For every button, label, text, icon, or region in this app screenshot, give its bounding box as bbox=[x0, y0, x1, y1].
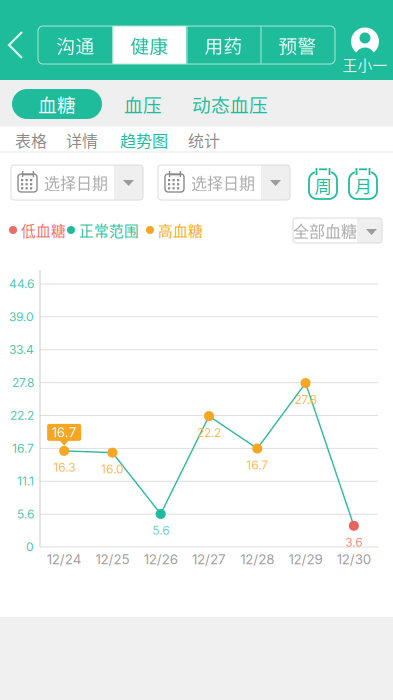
button[interactable]: 用药 bbox=[186, 26, 260, 64]
staticText: 详情 bbox=[66, 128, 98, 152]
staticText: 正常范围 bbox=[79, 219, 139, 241]
staticText: 12/27 bbox=[192, 551, 226, 567]
staticText: 22.2 bbox=[10, 408, 34, 423]
staticText: 12/26 bbox=[144, 551, 178, 567]
button[interactable]: 动态血压 bbox=[187, 89, 273, 119]
button[interactable]: Profile 王小一 bbox=[337, 25, 393, 75]
staticText: 选择日期 bbox=[44, 171, 108, 194]
button[interactable]: 全部血糖 bbox=[293, 218, 382, 243]
staticText: 27.8 bbox=[295, 392, 317, 407]
staticText: 高血糖 bbox=[158, 219, 203, 241]
staticText: 用药 bbox=[204, 31, 242, 58]
button[interactable]: 血压 bbox=[113, 89, 173, 119]
staticText: 0 bbox=[26, 540, 34, 554]
staticText: 王小一 bbox=[342, 54, 387, 75]
button[interactable]: 周 bbox=[308, 163, 338, 201]
staticText: 12/24 bbox=[47, 551, 82, 567]
staticText: 16.3 bbox=[53, 460, 75, 475]
staticText: 39.0 bbox=[9, 310, 34, 324]
button[interactable]: 沟通 bbox=[38, 26, 112, 64]
staticText: 统计 bbox=[188, 128, 220, 152]
staticText: 16.7 bbox=[52, 424, 77, 440]
staticText: 44.6 bbox=[9, 277, 34, 291]
staticText: 11.1 bbox=[17, 474, 34, 488]
staticText: 5.6 bbox=[152, 523, 169, 538]
button[interactable]: 表格 bbox=[6, 126, 56, 153]
staticText: 12/28 bbox=[240, 551, 274, 567]
staticText: 33.4 bbox=[9, 342, 34, 357]
staticText: 16.0 bbox=[101, 462, 124, 476]
staticText: 表格 bbox=[15, 128, 47, 152]
staticText: 低血糖 bbox=[21, 219, 66, 241]
button[interactable]: 选择日期 bbox=[11, 165, 143, 200]
button[interactable]: 健康 bbox=[112, 26, 186, 64]
staticText: 12/25 bbox=[95, 551, 129, 567]
button[interactable]: 血糖 bbox=[12, 89, 102, 119]
staticText: 3.6 bbox=[345, 535, 362, 549]
staticText: 27.8 bbox=[12, 375, 34, 390]
staticText: 预警 bbox=[278, 31, 316, 58]
staticText: 16.7 bbox=[12, 441, 34, 456]
staticText: 全部血糖 bbox=[293, 219, 357, 242]
staticText: 动态血压 bbox=[192, 90, 268, 117]
staticText: 12/29 bbox=[289, 551, 323, 567]
staticText: 16.7 bbox=[246, 458, 268, 472]
button[interactable]: 月 bbox=[348, 163, 378, 201]
button[interactable]: 统计 bbox=[179, 126, 229, 153]
staticText: 健康 bbox=[130, 31, 168, 58]
staticText: 血压 bbox=[124, 90, 162, 117]
staticText: 血糖 bbox=[38, 90, 76, 117]
button[interactable]: 预警 bbox=[260, 26, 334, 64]
staticText: 12/30 bbox=[337, 551, 371, 567]
button[interactable]: 趋势图 bbox=[119, 126, 169, 153]
button[interactable]: 选择日期 bbox=[158, 165, 290, 200]
staticText: 周 bbox=[314, 173, 331, 198]
staticText: 22.2 bbox=[197, 425, 221, 440]
button[interactable]: 详情 bbox=[57, 126, 107, 153]
staticText: 沟通 bbox=[56, 31, 94, 58]
button[interactable]: Back bbox=[0, 0, 34, 80]
staticText: 趋势图 bbox=[120, 128, 168, 152]
staticText: 5.6 bbox=[17, 507, 34, 521]
staticText: 月 bbox=[354, 173, 371, 198]
staticText: 选择日期 bbox=[191, 171, 255, 194]
